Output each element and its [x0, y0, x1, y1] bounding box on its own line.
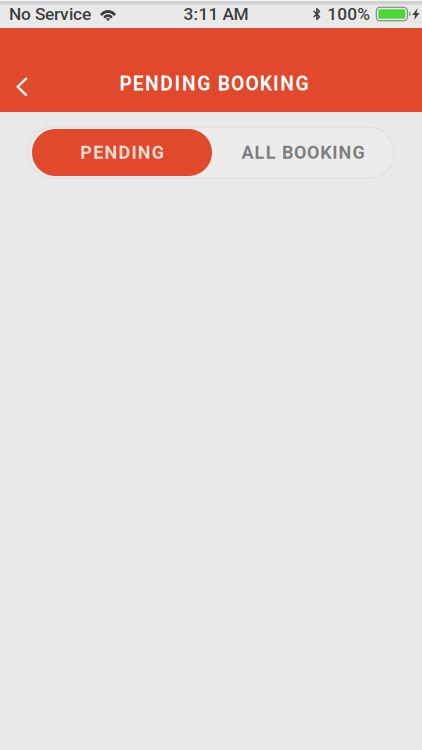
button[interactable]: ALL BOOKING — [212, 129, 394, 176]
staticText: 100% — [327, 4, 370, 24]
staticText: No Service — [9, 4, 91, 24]
staticText: PENDING — [80, 142, 164, 163]
button[interactable]: Back — [0, 62, 44, 106]
staticText: 3:11 AM — [183, 4, 248, 24]
button[interactable]: PENDING — [32, 129, 212, 176]
staticText: ALL BOOKING — [241, 142, 364, 163]
staticText: PENDING BOOKING — [119, 73, 309, 95]
